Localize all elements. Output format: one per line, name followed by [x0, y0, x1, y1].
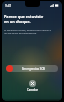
- staticText: Emergencias SOS: [22, 67, 46, 71]
- other: Emergencias SOS: [6, 65, 13, 72]
- staticText: Parece que estuviste en un choque.: [4, 14, 44, 24]
- button[interactable]: Cancelar: [29, 80, 36, 87]
- button[interactable]: Emergencias SOS: [6, 65, 58, 72]
- staticText: 9:41: [5, 4, 12, 8]
- staticText: Si necesitas ayuda, desliza para llamar …: [4, 28, 51, 34]
- staticText: Cancelar: [27, 88, 38, 92]
